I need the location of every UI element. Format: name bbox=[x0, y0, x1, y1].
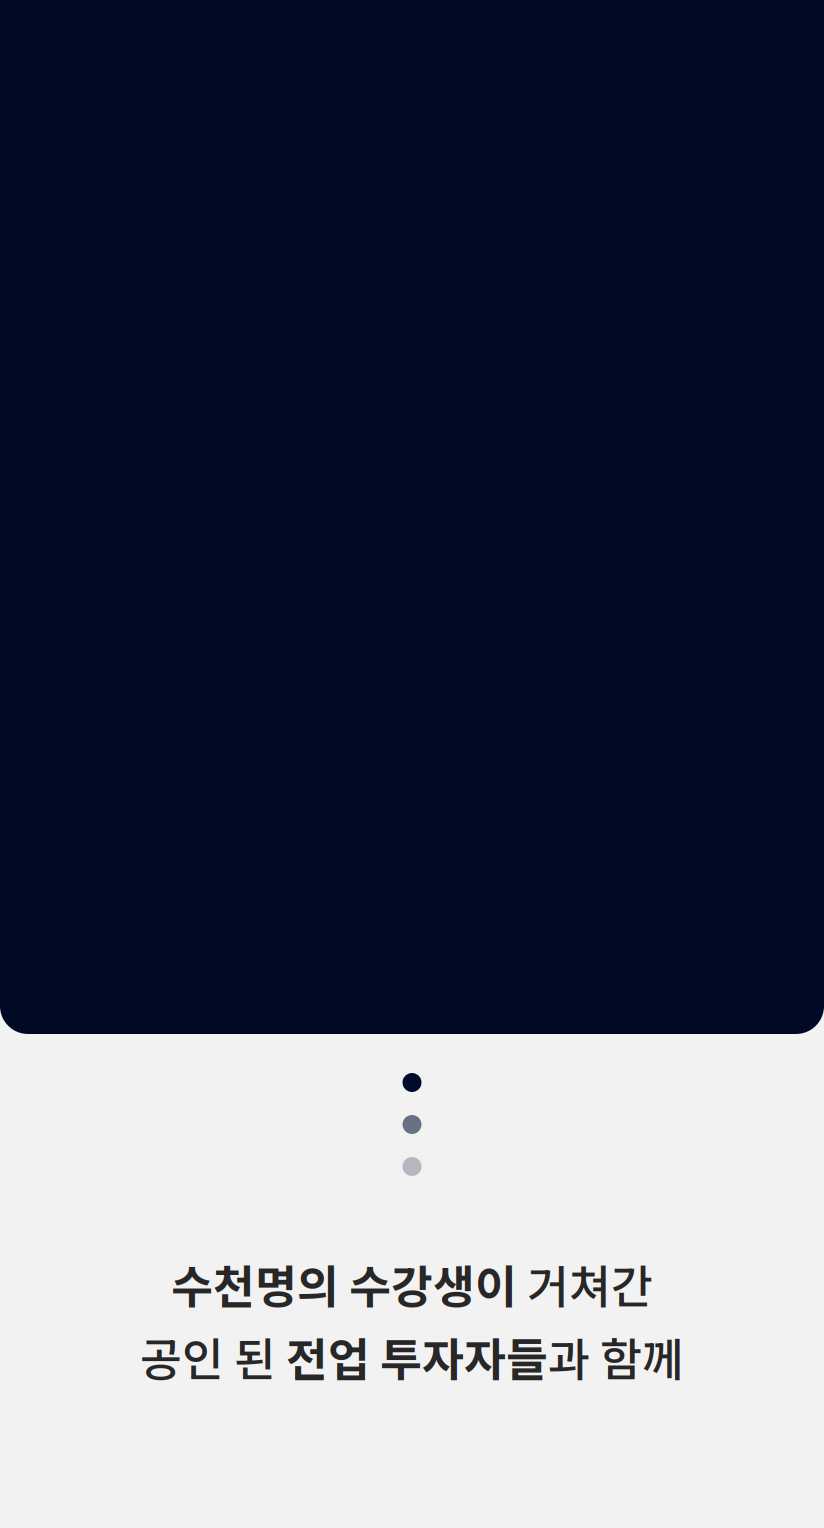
staticText: 공인 된 bbox=[140, 1324, 286, 1389]
staticText: 수천명의 수강생이 bbox=[171, 1251, 517, 1317]
staticText: 전업 투자자들 bbox=[286, 1324, 548, 1389]
button[interactable]: Onboarding illustration bbox=[0, 0, 824, 1074]
button[interactable]: Page 1 of 3, current page bbox=[402, 1073, 421, 1092]
button[interactable]: Page 2 of 3 bbox=[402, 1115, 421, 1134]
staticText: 거쳐간 bbox=[517, 1251, 653, 1317]
button[interactable]: Page 3 of 3 bbox=[402, 1157, 421, 1176]
staticText: 과 함께 bbox=[548, 1324, 684, 1389]
